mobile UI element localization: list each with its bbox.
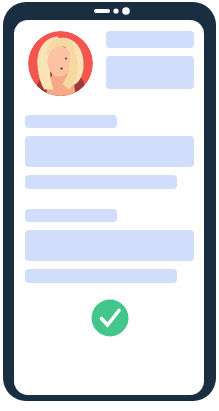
button[interactable] [25, 115, 194, 189]
button[interactable]: Confirm [91, 299, 129, 337]
button[interactable]: Profile photo [28, 31, 93, 96]
button[interactable] [25, 209, 194, 283]
